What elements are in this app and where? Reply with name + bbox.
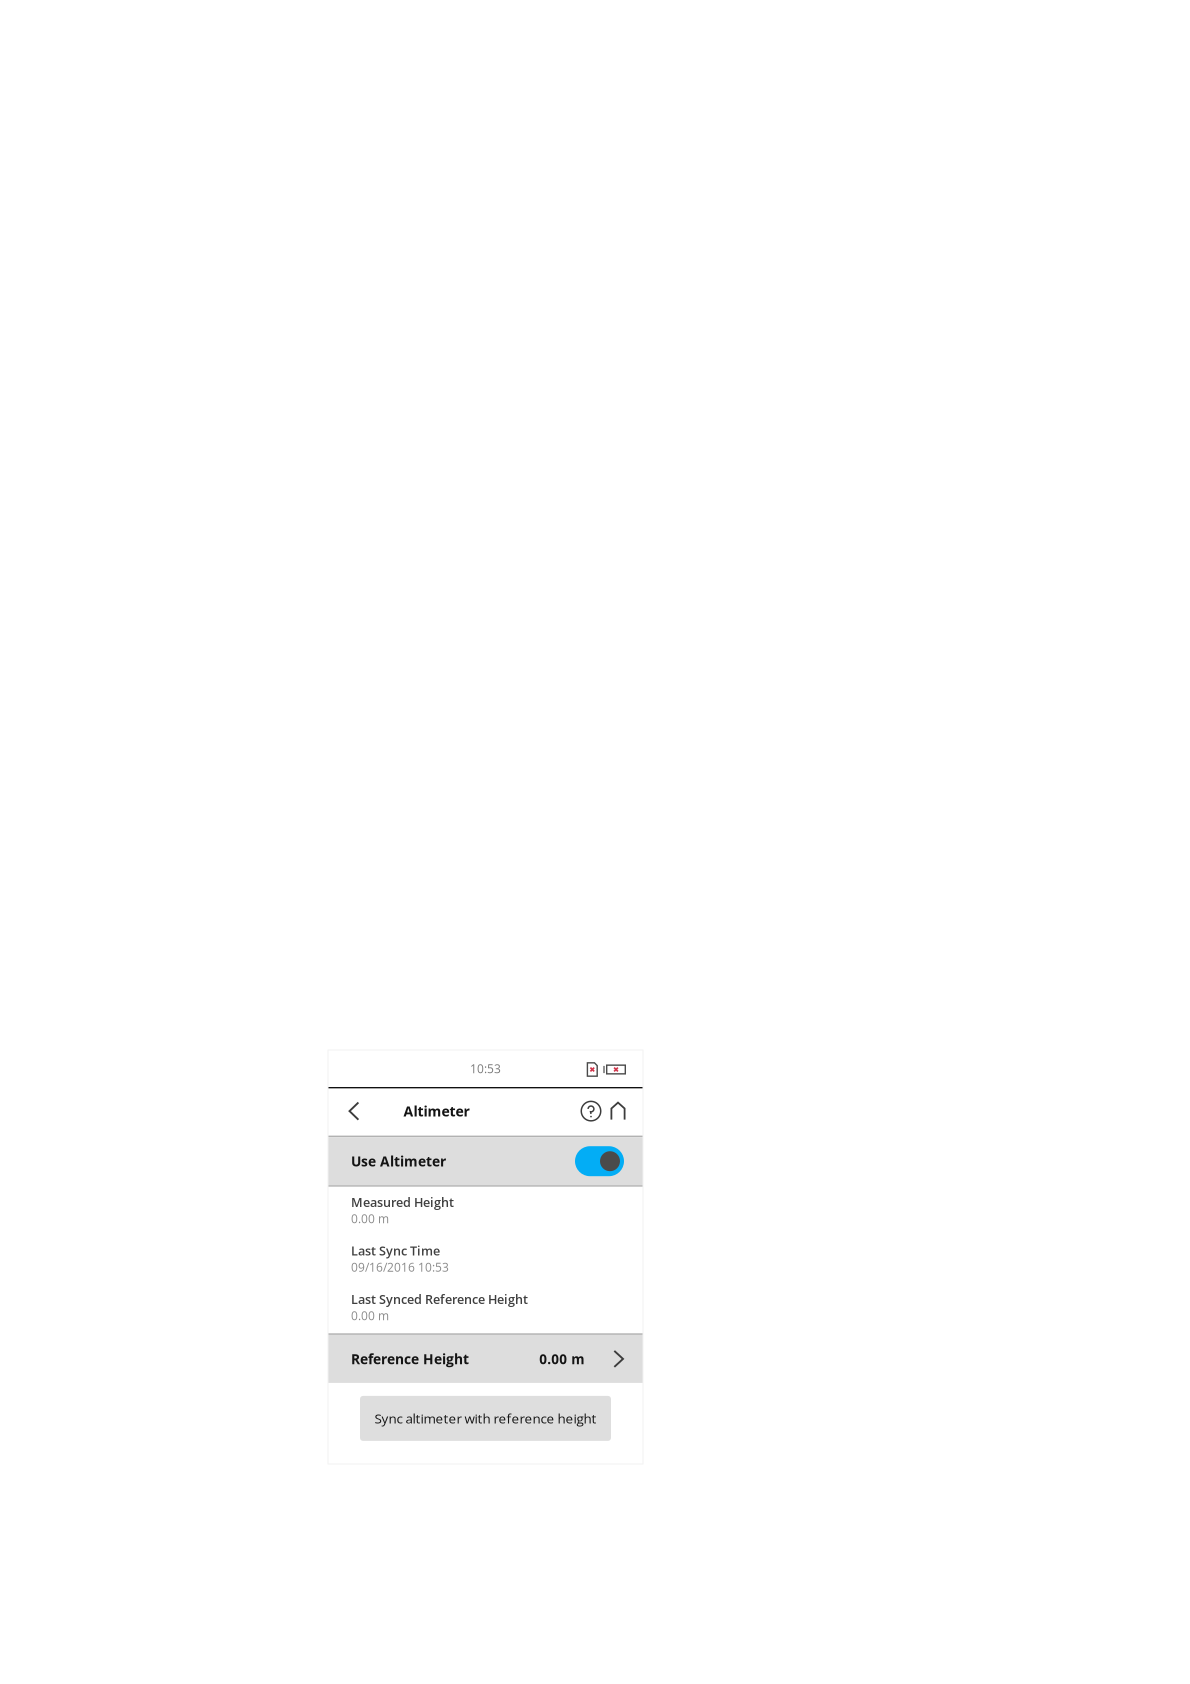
button[interactable]: Back — [328, 1089, 403, 1134]
staticText: Last Synced Reference Height — [351, 1290, 528, 1308]
staticText: 0.00 m — [351, 1210, 389, 1227]
staticText: Use Altimeter — [351, 1152, 446, 1171]
staticText: 0.00 m — [539, 1350, 584, 1368]
staticText: Altimeter — [403, 1102, 469, 1121]
button[interactable]: Home — [604, 1089, 632, 1134]
staticText: Last Sync Time — [351, 1242, 440, 1259]
staticText: Reference Height — [351, 1349, 469, 1368]
staticText: 10:53 — [470, 1060, 501, 1077]
staticText: Measured Height — [351, 1193, 454, 1211]
button[interactable]: Help — [579, 1089, 603, 1134]
staticText: 0.00 m — [351, 1307, 389, 1324]
button[interactable]: Reference Height — [328, 1335, 643, 1383]
staticText: 09/16/2016 10:53 — [351, 1259, 449, 1275]
button[interactable]: Sync altimeter with reference height — [360, 1396, 611, 1441]
button[interactable]: Use Altimeter — [328, 1137, 643, 1185]
staticText: Sync altimeter with reference height — [374, 1409, 596, 1427]
